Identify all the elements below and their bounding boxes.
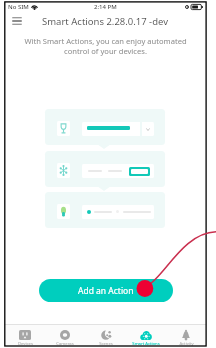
button[interactable]: Cameras	[45, 324, 85, 346]
staticText: With Smart Actions, you can enjoy automa…	[11, 36, 200, 56]
button[interactable]: Activity	[166, 324, 206, 346]
staticText: Add an Action	[78, 285, 134, 297]
staticText: Activity	[179, 341, 194, 346]
button[interactable]: Add an Action	[39, 279, 173, 302]
staticText: Smart Actions	[132, 341, 160, 346]
staticText: Devices	[18, 341, 33, 346]
button[interactable]: Smart Actions	[126, 324, 166, 346]
staticText: Cameras	[56, 341, 74, 346]
button[interactable]: Devices	[5, 324, 45, 346]
staticText: 2:14 PM	[94, 3, 117, 11]
staticText: No SIM	[8, 3, 29, 11]
staticText: Smart Actions 2.28.0.17 -dev	[42, 15, 169, 28]
button[interactable]: Open navigation menu	[9, 13, 25, 29]
staticText: Scenes	[99, 341, 113, 346]
button[interactable]: Scenes	[86, 324, 126, 346]
